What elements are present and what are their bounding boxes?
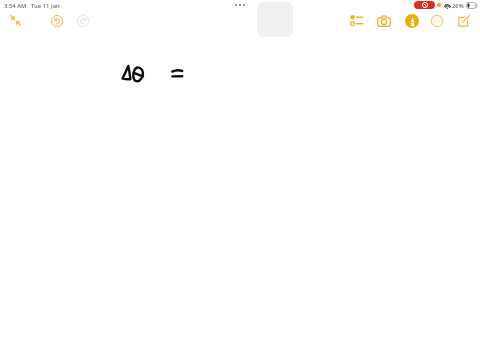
button[interactable]: Checklist: [350, 15, 363, 26]
button[interactable]: Pen tool: [405, 14, 419, 28]
button[interactable]: Stop recording: [414, 1, 435, 9]
button[interactable]: Collapse: [10, 15, 21, 26]
button[interactable]: Camera: [377, 15, 391, 27]
button[interactable]: Edit: [458, 15, 470, 27]
button[interactable]: Redo: [77, 15, 89, 27]
staticText: 3:54 AM Tue 11 Jan: [4, 2, 60, 10]
staticText: 26%: [452, 2, 464, 10]
button[interactable]: More options: [431, 15, 443, 27]
button[interactable]: Move toolbar: [235, 4, 245, 6]
button[interactable]: Undo: [51, 15, 63, 27]
